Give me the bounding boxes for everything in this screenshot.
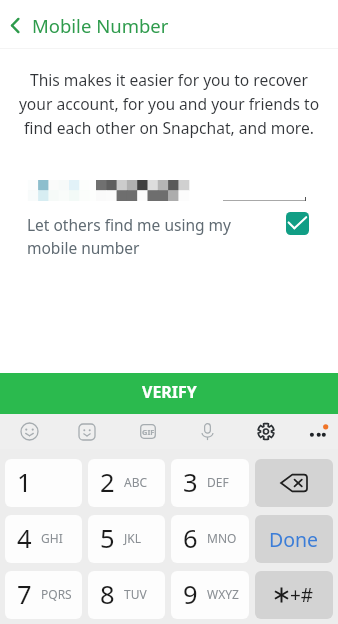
staticText: DEF: [207, 474, 229, 490]
button[interactable]: Stickers: [70, 414, 104, 449]
staticText: 8: [100, 577, 115, 612]
button[interactable]: 1: [5, 459, 82, 507]
staticText: WXYZ: [207, 586, 239, 602]
staticText: +#: [290, 582, 314, 608]
button[interactable]: 6: [171, 515, 249, 563]
staticText: 6: [183, 521, 198, 556]
button[interactable]: Emoji: [12, 414, 46, 449]
staticText: 5: [100, 521, 115, 556]
staticText: MNO: [207, 530, 237, 546]
button[interactable]: Voice input: [190, 414, 224, 449]
button[interactable]: 8: [88, 571, 165, 619]
staticText: PQRS: [41, 586, 72, 602]
staticText: 9: [183, 577, 198, 612]
button[interactable]: 2: [88, 459, 165, 507]
button[interactable]: Let others find me using my mobile numbe…: [0, 214, 338, 259]
staticText: TUV: [124, 586, 147, 602]
button[interactable]: Backspace: [255, 459, 333, 507]
button[interactable]: 4: [5, 515, 82, 563]
staticText: Mobile Number: [32, 13, 169, 38]
staticText: 4: [17, 521, 32, 556]
staticText: Let others find me using my mobile numbe…: [27, 214, 237, 259]
button[interactable]: 9: [171, 571, 249, 619]
staticText: Done: [269, 526, 319, 553]
staticText: This makes it easier for you to recover …: [16, 69, 322, 138]
button[interactable]: Done: [255, 515, 333, 563]
button[interactable]: GIF: [131, 414, 165, 449]
staticText: JKL: [124, 530, 141, 546]
button[interactable]: +#: [255, 571, 333, 619]
button[interactable]: More options: [300, 414, 334, 449]
staticText: 7: [17, 577, 32, 612]
button[interactable]: Mobile Number: [0, 7, 181, 44]
staticText: 2: [100, 465, 115, 500]
staticText: VERIFY: [142, 381, 197, 403]
staticText: 3: [183, 465, 198, 500]
staticText: GHI: [41, 530, 63, 546]
staticText: GIF: [142, 427, 155, 437]
button[interactable]: 7: [5, 571, 82, 619]
button[interactable]: 5: [88, 515, 165, 563]
staticText: 1: [17, 465, 32, 500]
staticText: ABC: [124, 474, 148, 490]
button[interactable]: VERIFY: [0, 373, 338, 414]
button[interactable]: Settings: [249, 414, 283, 449]
button[interactable]: 3: [171, 459, 249, 507]
